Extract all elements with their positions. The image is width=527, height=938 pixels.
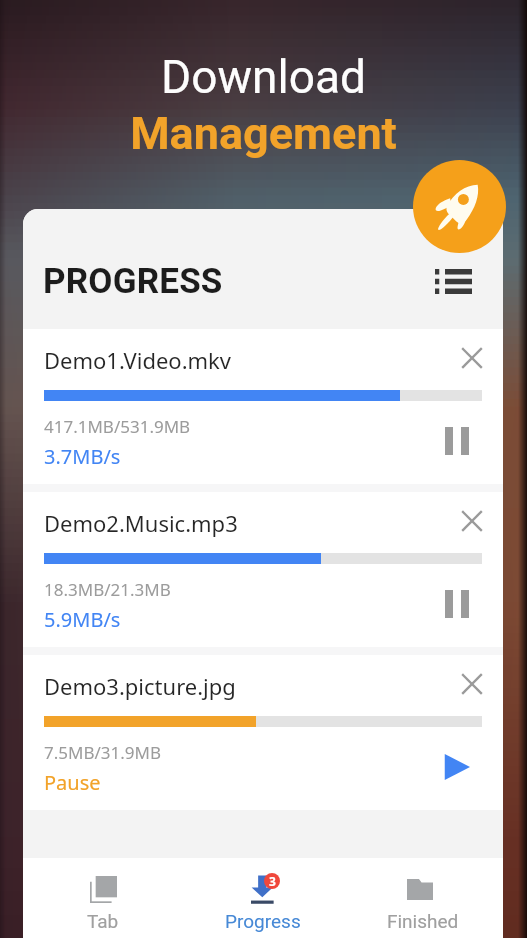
button[interactable]: Finished <box>343 858 503 938</box>
staticText: Demo3.picture.jpg <box>44 671 236 701</box>
staticText: Finished <box>387 910 459 932</box>
button[interactable]: Demo1.Video.mkv <box>23 329 503 484</box>
staticText: 3.7MB/s <box>44 443 121 470</box>
button[interactable]: Cancel download <box>452 501 492 541</box>
staticText: PROGRESS <box>43 261 223 302</box>
button[interactable]: Cancel download <box>452 664 492 704</box>
staticText: Pause <box>44 769 101 796</box>
staticText: Progress <box>225 910 301 932</box>
staticText: 417.1MB/531.9MB <box>44 415 191 438</box>
staticText: 18.3MB/21.3MB <box>44 578 171 601</box>
button[interactable]: List view <box>431 259 475 303</box>
staticText: Tab <box>87 910 119 932</box>
button[interactable]: Pause download <box>434 581 480 627</box>
staticText: 7.5MB/31.9MB <box>44 741 161 764</box>
staticText: 3 <box>269 873 276 889</box>
staticText: Demo1.Video.mkv <box>44 345 232 375</box>
staticText: Demo2.Music.mp3 <box>44 508 238 538</box>
button[interactable]: Boost download <box>413 160 506 253</box>
staticText: Download <box>0 50 527 104</box>
button[interactable]: Pause download <box>434 418 480 464</box>
button[interactable]: Tab <box>23 858 183 938</box>
button[interactable]: 3 <box>183 858 343 938</box>
staticText: 5.9MB/s <box>44 606 121 633</box>
button[interactable]: Demo3.picture.jpg <box>23 655 503 810</box>
button[interactable]: Cancel download <box>452 338 492 378</box>
staticText: Management <box>0 107 527 160</box>
button[interactable]: Resume download <box>434 744 480 790</box>
button[interactable]: Demo2.Music.mp3 <box>23 492 503 647</box>
